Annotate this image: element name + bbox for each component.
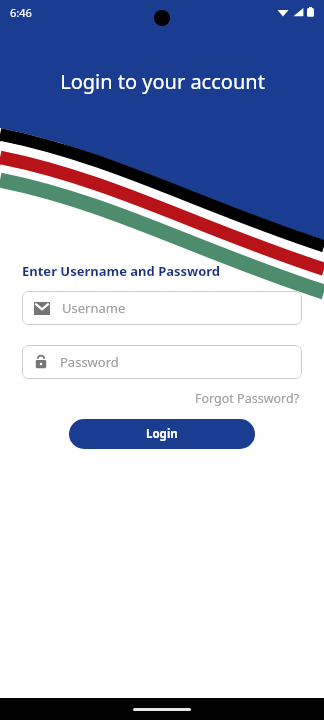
other: Password: [34, 355, 48, 369]
button[interactable]: Password: [22, 345, 302, 379]
button[interactable]: Login: [69, 419, 255, 449]
staticText: 6:46: [10, 5, 32, 20]
other: Username: [34, 302, 50, 315]
button[interactable]: Forgot Password?: [193, 388, 302, 409]
staticText: Login to your account: [60, 68, 265, 95]
staticText: Enter Username and Password: [22, 262, 221, 280]
staticText: Login: [146, 426, 178, 442]
staticText: Password: [60, 353, 119, 371]
staticText: Username: [62, 299, 126, 317]
staticText: Forgot Password?: [195, 390, 300, 407]
button[interactable]: Username: [22, 291, 302, 325]
